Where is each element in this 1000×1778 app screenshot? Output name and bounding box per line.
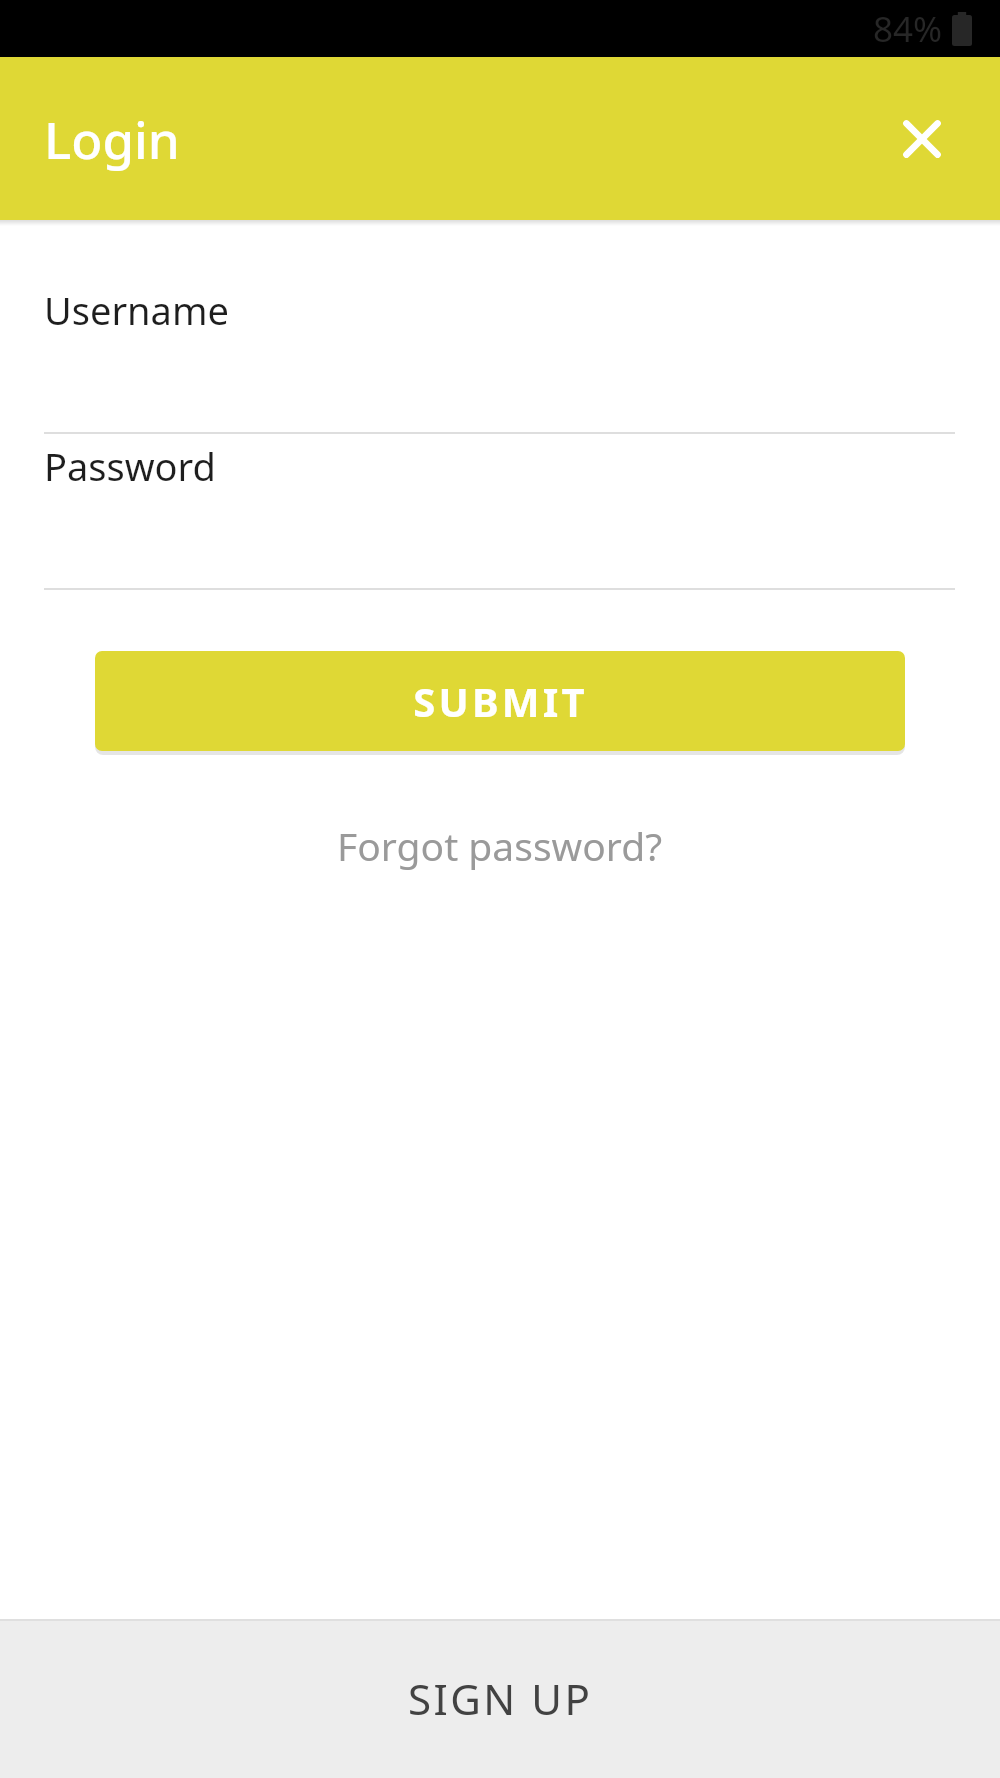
button[interactable]: Password [0, 434, 1000, 590]
staticText: SUBMIT [413, 674, 588, 728]
staticText: Forgot password? [337, 819, 663, 872]
button[interactable]: SUBMIT [95, 651, 905, 751]
staticText: Username [44, 284, 229, 336]
staticText: SIGN UP [408, 1670, 593, 1727]
button[interactable]: Close [896, 113, 948, 165]
staticText: Login [44, 104, 180, 173]
staticText: 84% [873, 5, 943, 53]
staticText: Password [44, 440, 216, 492]
button[interactable]: Username [0, 284, 1000, 434]
button[interactable]: SIGN UP [0, 1619, 1000, 1778]
button[interactable]: Forgot password? [319, 805, 681, 886]
